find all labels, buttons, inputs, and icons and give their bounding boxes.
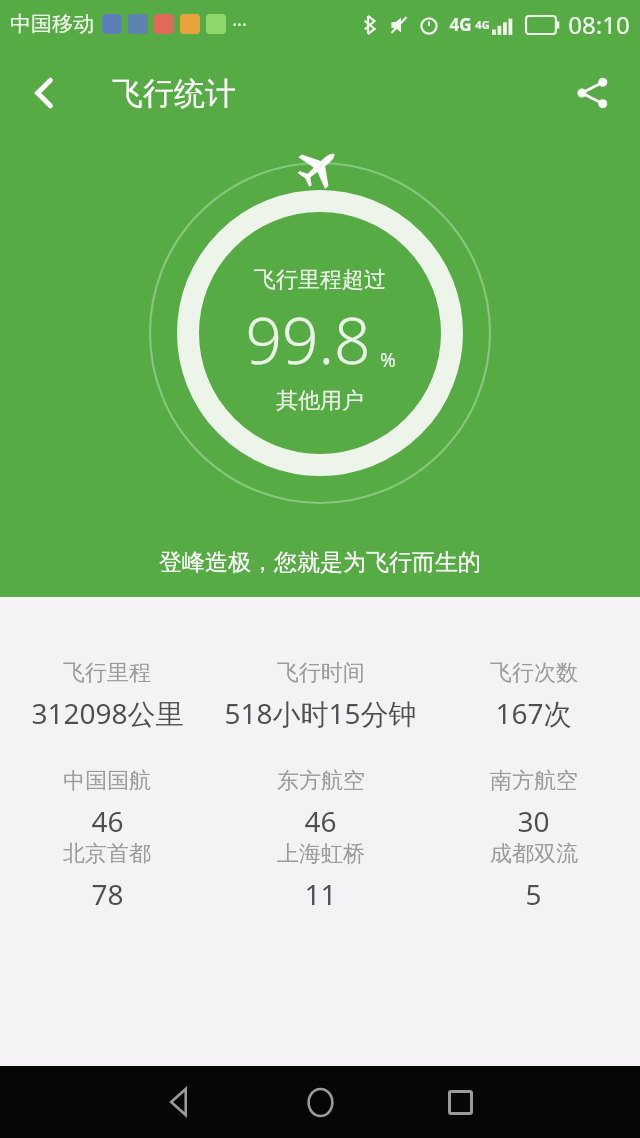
staticText: 518小时15分钟 (224, 694, 417, 732)
staticText: 中国移动 (10, 11, 94, 37)
button[interactable]: 飞行时间 (214, 659, 427, 732)
staticText: 北京首都 (63, 840, 151, 868)
staticText: 99.8 (245, 296, 371, 383)
staticText: 312098公里 (31, 694, 184, 732)
staticText: 飞行时间 (277, 659, 365, 687)
staticText: 飞行里程 (63, 659, 151, 687)
staticText: 5 (525, 875, 542, 913)
button[interactable]: 东方航空 (214, 767, 427, 840)
staticText: 11 (304, 875, 337, 913)
staticText: 东方航空 (277, 767, 365, 795)
button[interactable]: Home (288, 1070, 352, 1134)
button[interactable]: 飞行次数 (427, 659, 640, 732)
button[interactable]: 中国国航 (0, 767, 214, 840)
button[interactable]: 上海虹桥 (214, 840, 427, 913)
button[interactable]: 北京首都 (0, 840, 214, 913)
staticText: 78 (91, 875, 124, 913)
button[interactable]: Back (148, 1070, 212, 1134)
staticText: 167次 (495, 694, 572, 732)
staticText: 46 (304, 802, 337, 840)
button[interactable]: Share (560, 61, 624, 125)
staticText: 其他用户 (276, 387, 364, 415)
staticText: 30 (517, 802, 550, 840)
staticText: 飞行统计 (112, 74, 236, 113)
staticText: % (380, 347, 396, 373)
staticText: 4G (475, 17, 490, 32)
staticText: ··· (232, 12, 247, 37)
staticText: 4G (449, 13, 472, 36)
staticText: 08:10 (568, 8, 630, 41)
staticText: 飞行里程超过 (254, 266, 386, 294)
staticText: 飞行次数 (490, 659, 578, 687)
staticText: 中国国航 (63, 767, 151, 795)
button[interactable]: 南方航空 (427, 767, 640, 840)
button[interactable]: 成都双流 (427, 840, 640, 913)
button[interactable]: 飞行里程 (0, 659, 214, 732)
staticText: 46 (91, 802, 124, 840)
button[interactable]: Recents (428, 1070, 492, 1134)
staticText: 上海虹桥 (277, 840, 365, 868)
staticText: 登峰造极，您就是为飞行而生的 (0, 548, 640, 577)
button[interactable]: Back (12, 61, 76, 125)
staticText: 南方航空 (490, 767, 578, 795)
staticText: 成都双流 (490, 840, 578, 868)
